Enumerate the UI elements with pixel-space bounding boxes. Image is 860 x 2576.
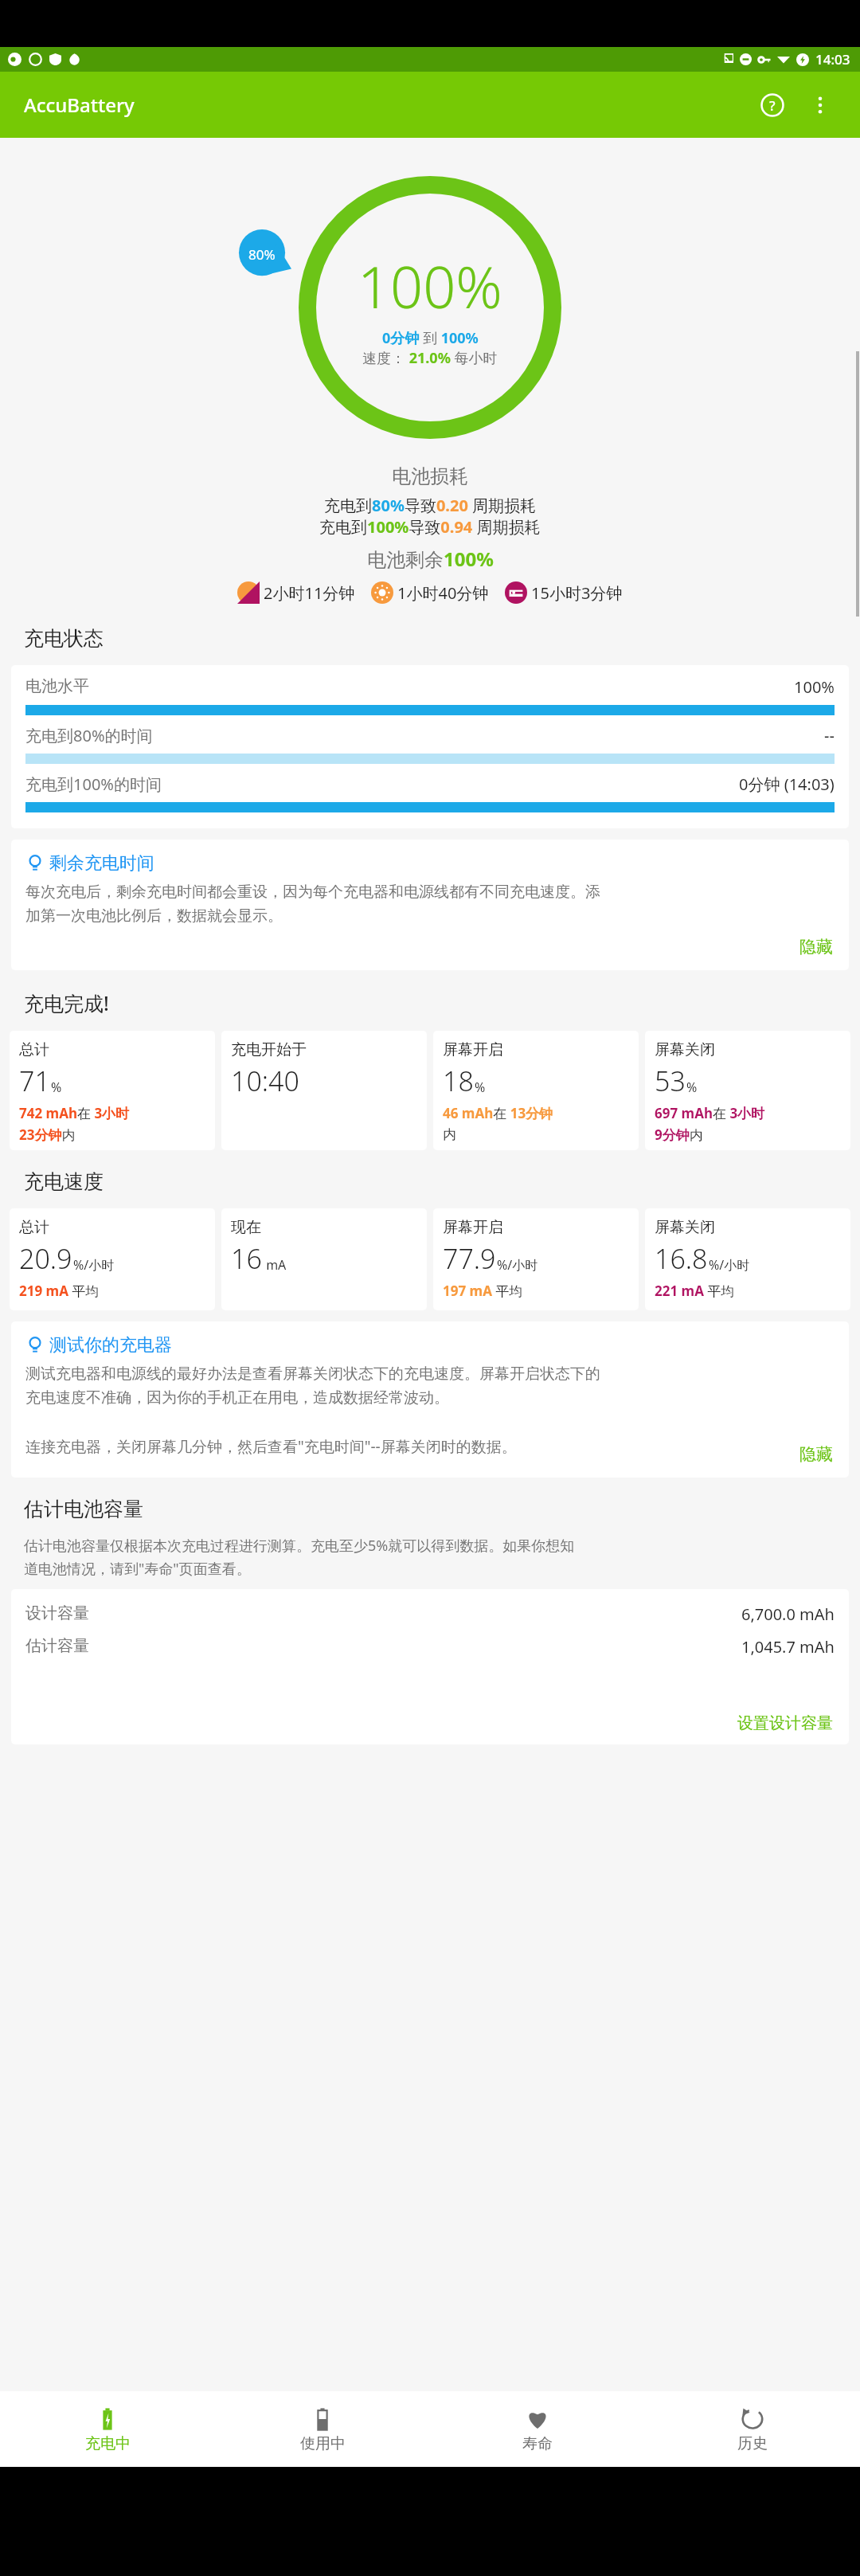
staticText: 充电开始于 <box>231 1040 307 1059</box>
staticText: 寿命 <box>522 2434 553 2453</box>
button[interactable]: 屏幕关闭 <box>645 1031 850 1150</box>
staticText: 现在 <box>231 1218 261 1237</box>
staticText: % <box>475 1079 486 1096</box>
staticText: 100% <box>794 676 835 698</box>
staticText: 2小时11分钟 <box>264 582 355 604</box>
staticText: 剩余充电时间 <box>49 852 154 875</box>
staticText: 219 mA 平均 <box>19 1282 100 1300</box>
staticText: 0分钟 (14:03) <box>739 773 835 795</box>
staticText: 速度： 21.0% 每小时 <box>362 348 498 368</box>
staticText: 充电中 <box>85 2434 131 2453</box>
staticText: 使用中 <box>300 2434 346 2453</box>
staticText: 屏幕开启 <box>443 1040 503 1059</box>
staticText: % <box>51 1079 62 1096</box>
staticText: 充电状态 <box>24 626 860 651</box>
staticText: 充电速度 <box>24 1169 860 1194</box>
button[interactable]: 隐藏 <box>799 1444 833 1465</box>
staticText: 估计电池容量 <box>24 1497 860 1521</box>
staticText: 屏幕开启 <box>443 1218 503 1237</box>
staticText: 估计电池容量仅根据本次充电过程进行测算。充电至少5%就可以得到数据。如果你想知 … <box>24 1536 575 1578</box>
staticText: %/小时 <box>497 1256 538 1274</box>
staticText: 1小时40分钟 <box>397 582 489 604</box>
staticText: 0分钟 到 100% <box>382 328 479 348</box>
button[interactable]: 充电中 <box>0 2391 215 2467</box>
staticText: 估计容量 <box>25 1636 89 1656</box>
staticText: 测试你的充电器 <box>49 1334 172 1357</box>
staticText: 充电到100%导致0.94 周期损耗 <box>319 516 541 538</box>
staticText: 总计 <box>19 1040 49 1059</box>
button[interactable]: 设置设计容量 <box>737 1713 833 1733</box>
button[interactable]: 历史 <box>645 2391 860 2467</box>
staticText: 10:40 <box>231 1063 299 1099</box>
staticText: %/小时 <box>709 1256 750 1274</box>
staticText: 16 <box>231 1240 262 1277</box>
button[interactable]: 隐藏 <box>799 937 833 957</box>
staticText: 20.9 <box>19 1240 72 1277</box>
staticText: 46 mAh在 13分钟 内 <box>443 1104 553 1143</box>
staticText: ? <box>769 96 776 115</box>
staticText: 53 <box>655 1063 686 1099</box>
staticText: 充电到80%的时间 <box>25 725 153 746</box>
staticText: 197 mA 平均 <box>443 1282 523 1300</box>
staticText: 80% <box>248 245 276 264</box>
button[interactable]: 充电开始于 <box>221 1031 427 1150</box>
staticText: 历史 <box>737 2434 768 2453</box>
button[interactable]: 屏幕关闭 <box>645 1208 850 1310</box>
staticText: 14:03 <box>815 50 850 69</box>
staticText: mA <box>263 1256 287 1274</box>
staticText: 742 mAh在 3小时 23分钟内 <box>19 1104 130 1144</box>
staticText: -- <box>824 725 835 746</box>
staticText: 充电到80%导致0.20 周期损耗 <box>324 495 537 516</box>
staticText: 屏幕关闭 <box>655 1040 715 1059</box>
staticText: 6,700.0 mAh <box>741 1603 835 1625</box>
staticText: 屏幕关闭 <box>655 1218 715 1237</box>
staticText: 71 <box>19 1063 50 1099</box>
staticText: 15小时3分钟 <box>531 582 623 604</box>
staticText: 测试充电器和电源线的最好办法是查看屏幕关闭状态下的充电速度。屏幕开启状态下的 充… <box>25 1364 600 1456</box>
staticText: %/小时 <box>73 1256 115 1274</box>
button[interactable]: 屏幕开启 <box>433 1208 639 1310</box>
staticText: 100% <box>358 247 502 325</box>
button[interactable]: 总计 <box>10 1031 215 1150</box>
button[interactable]: 总计 <box>10 1208 215 1310</box>
staticText: 充电完成! <box>24 989 860 1016</box>
staticText: 每次充电后，剩余充电时间都会重设，因为每个充电器和电源线都有不同充电速度。添 加… <box>25 883 600 926</box>
staticText: AccuBattery <box>24 92 135 118</box>
staticText: 16.8 <box>655 1240 708 1277</box>
staticText: 1,045.7 mAh <box>741 1636 835 1658</box>
staticText: 设计容量 <box>25 1603 89 1623</box>
button[interactable]: 屏幕开启 <box>433 1031 639 1150</box>
button[interactable]: 使用中 <box>215 2391 430 2467</box>
staticText: 77.9 <box>443 1240 496 1277</box>
button[interactable]: 现在 <box>221 1208 427 1310</box>
staticText: 电池损耗 <box>392 464 468 488</box>
button[interactable]: 寿命 <box>430 2391 645 2467</box>
staticText: % <box>686 1079 698 1096</box>
staticText: 电池剩余100% <box>367 546 494 572</box>
staticText: 总计 <box>19 1218 49 1237</box>
button[interactable]: More options <box>796 81 844 129</box>
staticText: 18 <box>443 1063 474 1099</box>
button[interactable]: Help <box>749 81 796 129</box>
staticText: 充电到100%的时间 <box>25 773 162 795</box>
staticText: 697 mAh在 3小时 9分钟内 <box>655 1104 765 1144</box>
staticText: 电池水平 <box>25 676 89 696</box>
staticText: 221 mA 平均 <box>655 1282 735 1300</box>
